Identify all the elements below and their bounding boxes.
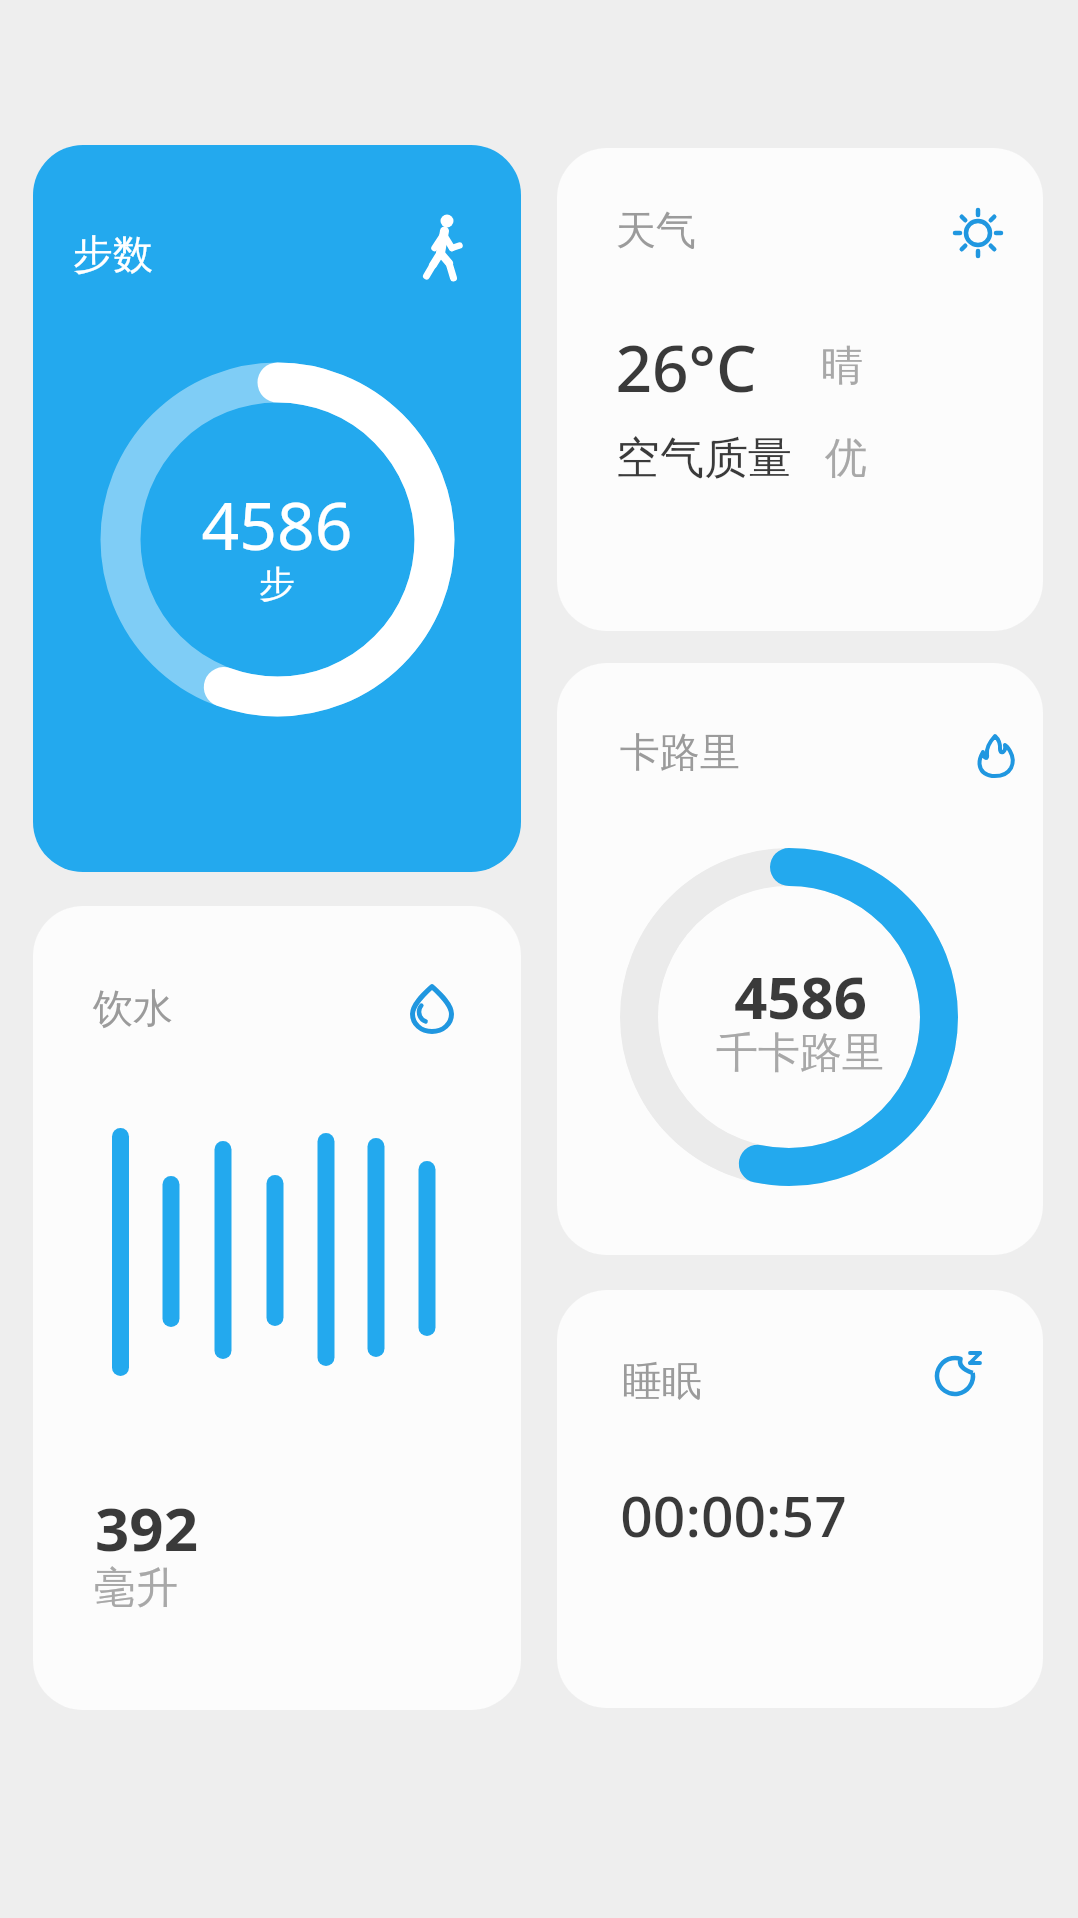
staticText: 步数 bbox=[73, 229, 153, 279]
staticText: 优 bbox=[825, 432, 867, 485]
button[interactable]: 卡路里 bbox=[557, 663, 1043, 1255]
staticText: 空气质量 bbox=[616, 431, 792, 486]
staticText: 00:00:57 bbox=[620, 1476, 847, 1554]
button[interactable]: 步数 bbox=[33, 145, 521, 872]
staticText: 392 bbox=[95, 1487, 198, 1569]
staticText: 步 bbox=[259, 561, 295, 606]
staticText: 卡路里 bbox=[620, 727, 740, 777]
staticText: 毫升 bbox=[94, 1562, 178, 1615]
staticText: 天气 bbox=[616, 205, 696, 255]
staticText: 睡眠 bbox=[622, 1356, 702, 1406]
staticText: 4586 bbox=[201, 479, 353, 569]
button[interactable]: 睡眠 bbox=[557, 1290, 1043, 1708]
button[interactable]: 天气 bbox=[557, 148, 1043, 631]
staticText: 晴 bbox=[821, 340, 863, 393]
staticText: 千卡路里 bbox=[716, 1027, 884, 1080]
staticText: 26°C bbox=[615, 324, 757, 411]
staticText: 4586 bbox=[734, 957, 867, 1036]
button[interactable]: 饮水 bbox=[33, 906, 521, 1710]
staticText: 饮水 bbox=[93, 983, 173, 1033]
